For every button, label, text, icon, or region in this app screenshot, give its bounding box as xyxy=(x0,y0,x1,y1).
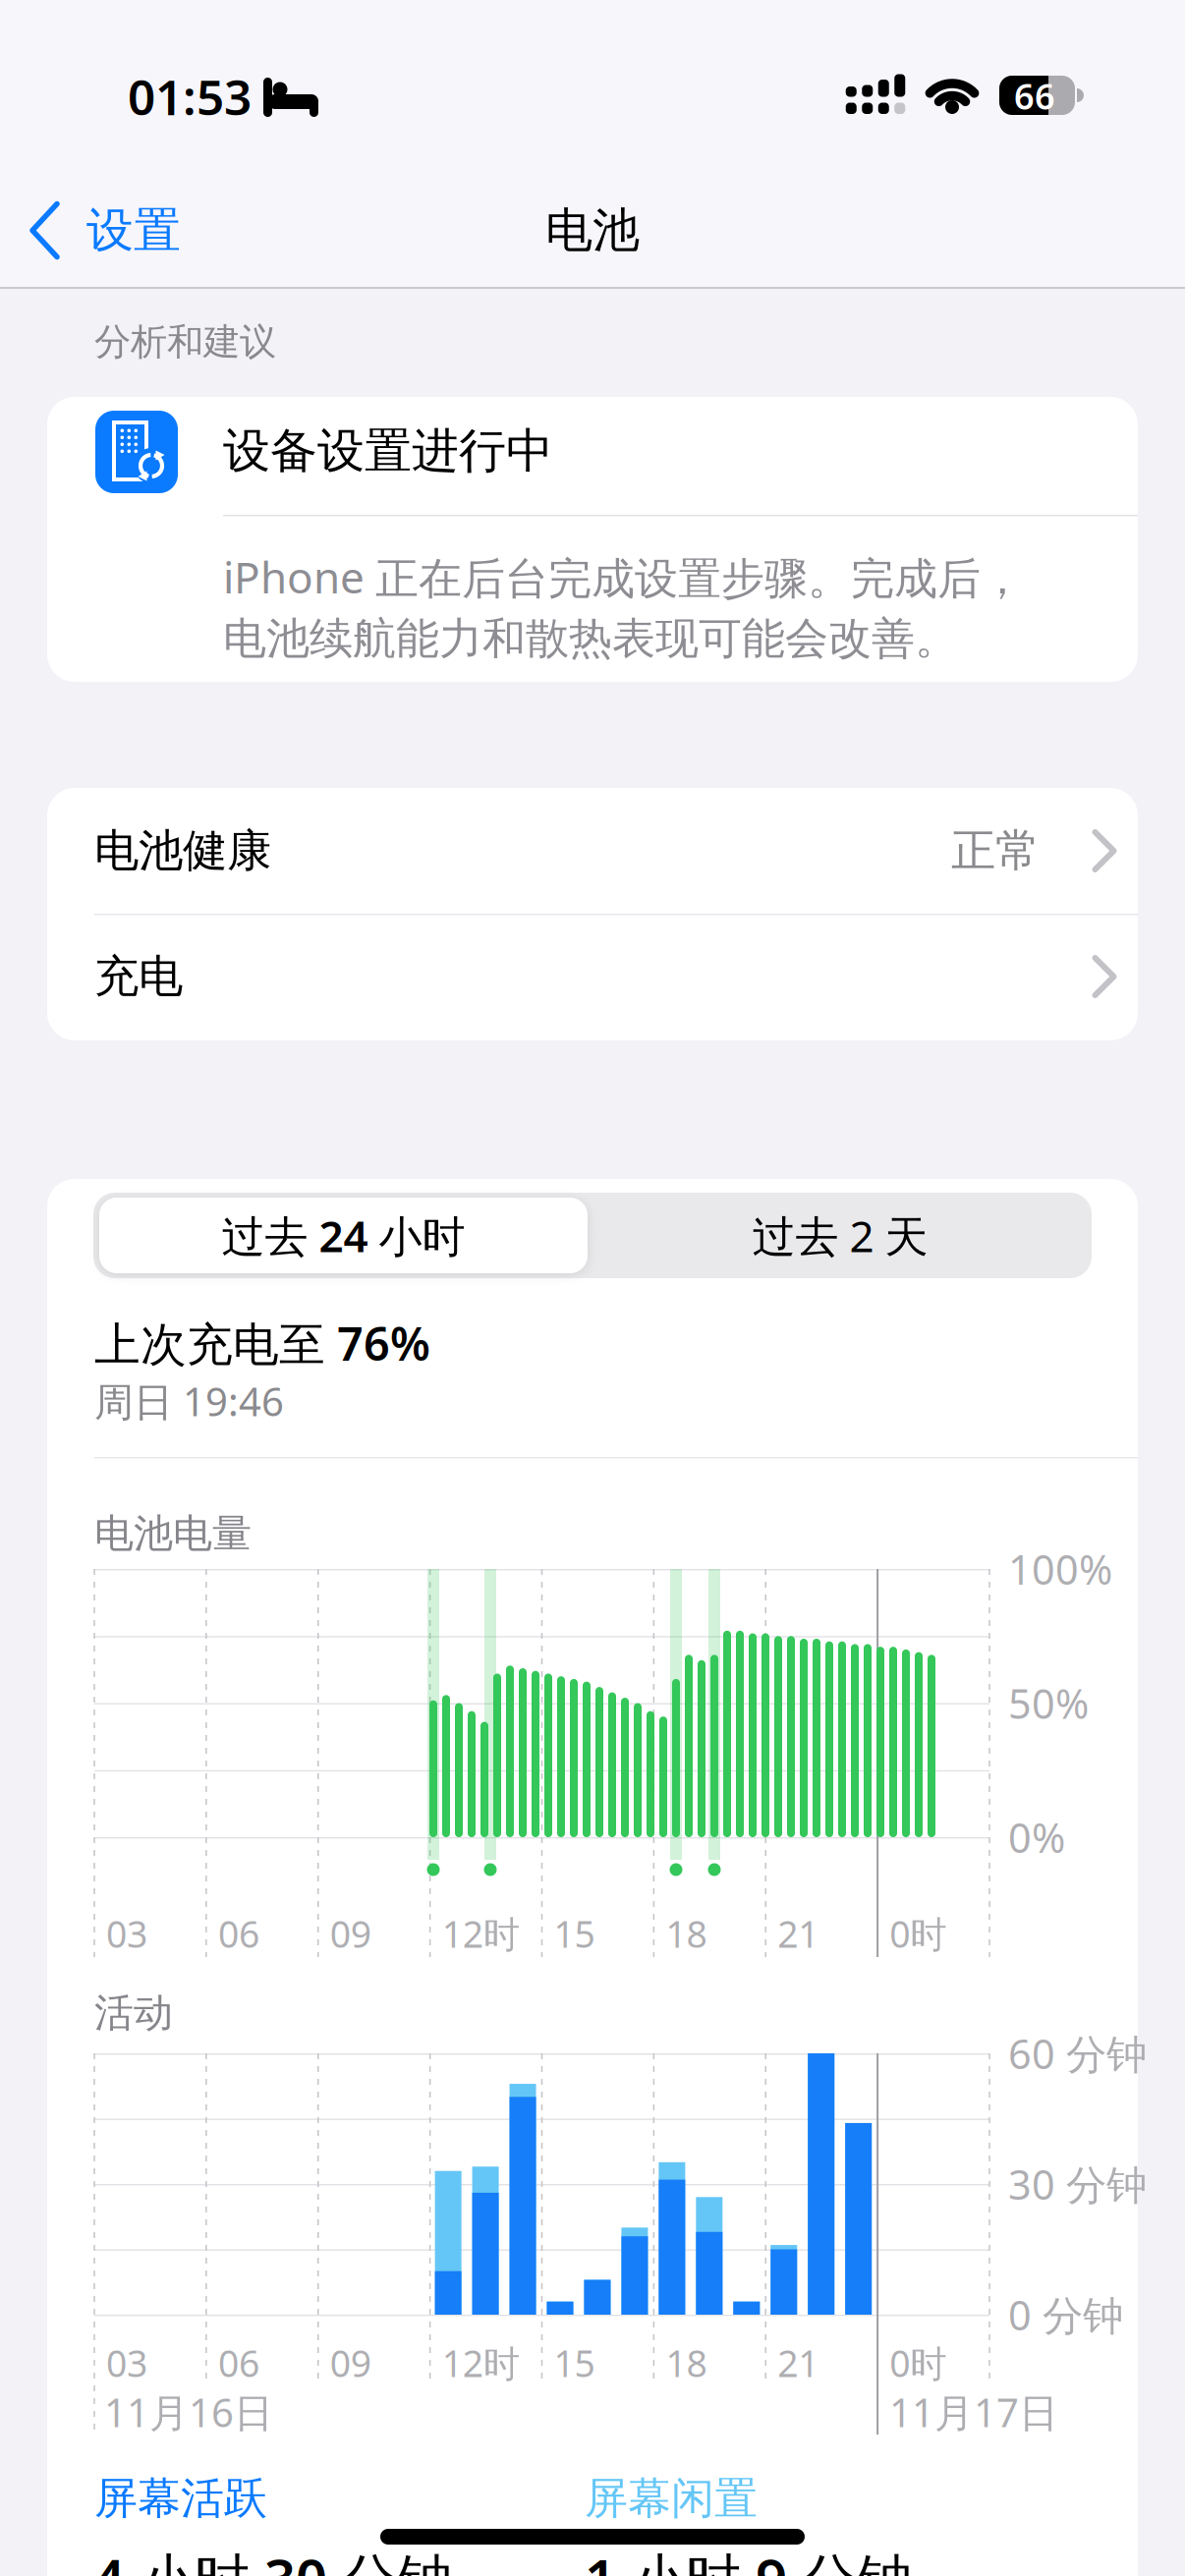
staticText: 1 小时 9 分钟 xyxy=(585,2541,912,2576)
staticText: 电池 xyxy=(545,201,640,259)
staticText: 4 小时 30 分钟 xyxy=(93,2541,452,2576)
staticText: 100% xyxy=(1008,1542,1112,1596)
staticText: 12时 xyxy=(442,1909,519,1958)
staticText: 66 xyxy=(1014,72,1055,119)
button[interactable]: 返回设置 xyxy=(25,191,251,270)
button[interactable]: 电池健康 xyxy=(47,788,1138,914)
staticText: 0 分钟 xyxy=(1008,2288,1123,2342)
staticText: 周日 19:46 xyxy=(94,1375,284,1427)
button[interactable]: 充电 xyxy=(47,914,1138,1039)
staticText: 15 xyxy=(554,1909,595,1958)
staticText: 11月16日 xyxy=(104,2386,273,2438)
staticText: 电池电量 xyxy=(94,1509,252,1558)
staticText: 0时 xyxy=(889,2338,946,2387)
button[interactable]: 过去 24 小时 xyxy=(99,1198,588,1273)
staticText: 18 xyxy=(666,2338,707,2387)
staticText: 电池续航能力和散热表现可能会改善。 xyxy=(223,612,958,665)
staticText: 50% xyxy=(1008,1676,1089,1730)
staticText: 06 xyxy=(218,2338,259,2387)
staticText: 03 xyxy=(106,2338,147,2387)
staticText: 01:53 xyxy=(128,64,252,128)
staticText: 设备设置进行中 xyxy=(223,422,553,480)
staticText: 09 xyxy=(330,1909,371,1958)
staticText: 过去 24 小时 xyxy=(222,1207,465,1264)
staticText: 过去 2 天 xyxy=(752,1207,928,1264)
staticText: 06 xyxy=(218,1909,259,1958)
staticText: 60 分钟 xyxy=(1008,2026,1147,2080)
staticText: 09 xyxy=(330,2338,371,2387)
staticText: 电池健康 xyxy=(94,823,271,878)
staticText: 15 xyxy=(554,2338,595,2387)
staticText: 屏幕闲置 xyxy=(585,2472,758,2525)
staticText: 正常 xyxy=(951,823,1040,878)
staticText: 30 分钟 xyxy=(1008,2157,1147,2211)
staticText: 11月17日 xyxy=(889,2386,1058,2438)
staticText: 屏幕活跃 xyxy=(94,2472,267,2525)
staticText: 上次充电至 76% xyxy=(94,1313,430,1373)
staticText: 充电 xyxy=(94,949,183,1004)
staticText: iPhone 正在后台完成设置步骤。完成后， xyxy=(223,548,1024,606)
staticText: 0% xyxy=(1008,1810,1065,1864)
staticText: 03 xyxy=(106,1909,147,1958)
staticText: 12时 xyxy=(442,2338,519,2387)
staticText: 18 xyxy=(666,1909,707,1958)
staticText: 设置 xyxy=(86,201,181,259)
staticText: 活动 xyxy=(94,1989,173,2037)
staticText: 21 xyxy=(777,2338,819,2387)
staticText: 21 xyxy=(777,1909,819,1958)
staticText: 0时 xyxy=(889,1909,946,1958)
staticText: 分析和建议 xyxy=(94,319,276,364)
button[interactable]: 过去 2 天 xyxy=(594,1198,1086,1273)
